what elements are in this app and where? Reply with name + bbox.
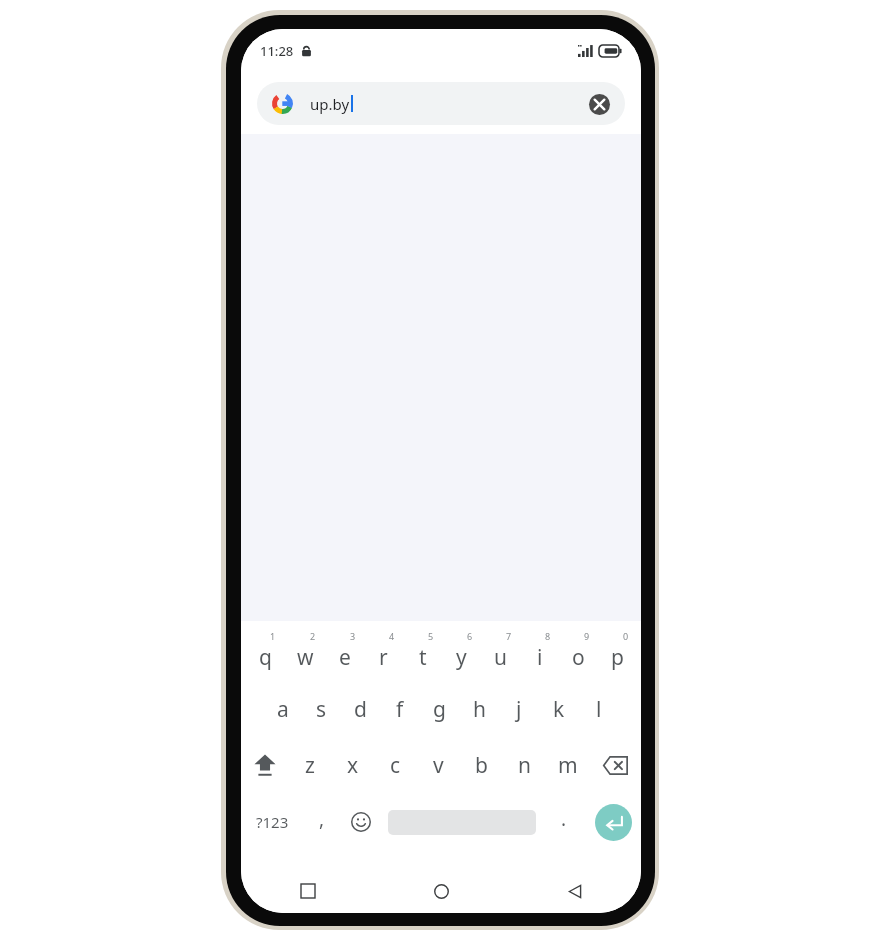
button[interactable]: Space: [388, 793, 536, 851]
button[interactable]: z: [289, 737, 331, 793]
button[interactable]: Back: [508, 869, 641, 913]
staticText: 11:28: [260, 42, 294, 60]
staticText: u: [494, 643, 507, 672]
staticText: ,: [319, 806, 325, 832]
staticText: m: [558, 751, 578, 780]
button[interactable]: 9: [559, 625, 598, 681]
staticText: g: [433, 695, 446, 724]
staticText: c: [390, 751, 401, 780]
button[interactable]: k: [539, 681, 579, 737]
button[interactable]: n: [503, 737, 546, 793]
staticText: z: [305, 751, 315, 780]
staticText: 3: [350, 630, 356, 642]
staticText: 0: [623, 630, 629, 642]
button[interactable]: f: [380, 681, 419, 737]
staticText: 2: [310, 630, 316, 642]
button[interactable]: Shift: [241, 737, 289, 793]
staticText: r: [379, 643, 388, 672]
button[interactable]: Emoji: [341, 793, 381, 851]
staticText: s: [316, 695, 327, 724]
staticText: 1: [270, 630, 276, 642]
button[interactable]: Recents: [241, 869, 375, 913]
button[interactable]: x: [331, 737, 374, 793]
button[interactable]: Clear search: [580, 85, 618, 123]
staticText: j: [516, 695, 522, 724]
button[interactable]: g: [419, 681, 459, 737]
button[interactable]: ,: [303, 793, 341, 851]
staticText: f: [396, 695, 404, 724]
staticText: a: [277, 695, 289, 724]
staticText: p: [611, 643, 624, 672]
button[interactable]: 0: [598, 625, 637, 681]
button[interactable]: m: [546, 737, 589, 793]
staticText: w: [297, 643, 314, 672]
button[interactable]: 3: [325, 625, 364, 681]
staticText: 9: [584, 630, 590, 642]
button[interactable]: .: [543, 793, 585, 851]
staticText: h: [473, 695, 486, 724]
staticText: .: [561, 806, 567, 832]
button[interactable]: c: [374, 737, 417, 793]
staticText: i: [537, 643, 543, 672]
button[interactable]: 6: [442, 625, 481, 681]
staticText: t: [419, 643, 427, 672]
button[interactable]: l: [579, 681, 619, 737]
staticText: x: [347, 751, 359, 780]
button[interactable]: h: [459, 681, 499, 737]
staticText: y: [456, 643, 467, 672]
button[interactable]: ?123: [241, 793, 303, 851]
button[interactable]: j: [499, 681, 539, 737]
button[interactable]: 5: [403, 625, 442, 681]
staticText: l: [596, 695, 602, 724]
button[interactable]: Backspace: [589, 737, 641, 793]
button[interactable]: 8: [520, 625, 559, 681]
staticText: ?123: [256, 812, 289, 832]
staticText: e: [339, 643, 351, 672]
staticText: v: [433, 751, 444, 780]
button[interactable]: b: [460, 737, 503, 793]
staticText: up.by: [310, 94, 350, 114]
button[interactable]: v: [417, 737, 460, 793]
staticText: 7: [506, 630, 512, 642]
button[interactable]: 1: [245, 625, 285, 681]
staticText: o: [572, 643, 585, 672]
staticText: n: [518, 751, 531, 780]
button[interactable]: 7: [481, 625, 520, 681]
button[interactable]: a: [263, 681, 302, 737]
staticText: 6: [467, 630, 473, 642]
staticText: d: [354, 695, 367, 724]
staticText: 4: [389, 630, 395, 642]
button[interactable]: d: [341, 681, 380, 737]
staticText: q: [259, 643, 272, 672]
button[interactable]: 2: [285, 625, 325, 681]
button[interactable]: up.by: [257, 82, 625, 125]
staticText: 8: [545, 630, 551, 642]
button[interactable]: Home: [375, 869, 508, 913]
staticText: b: [475, 751, 488, 780]
button[interactable]: Enter: [585, 793, 641, 851]
staticText: k: [553, 695, 565, 724]
button[interactable]: 4: [364, 625, 403, 681]
staticText: 5: [428, 630, 434, 642]
button[interactable]: s: [302, 681, 341, 737]
